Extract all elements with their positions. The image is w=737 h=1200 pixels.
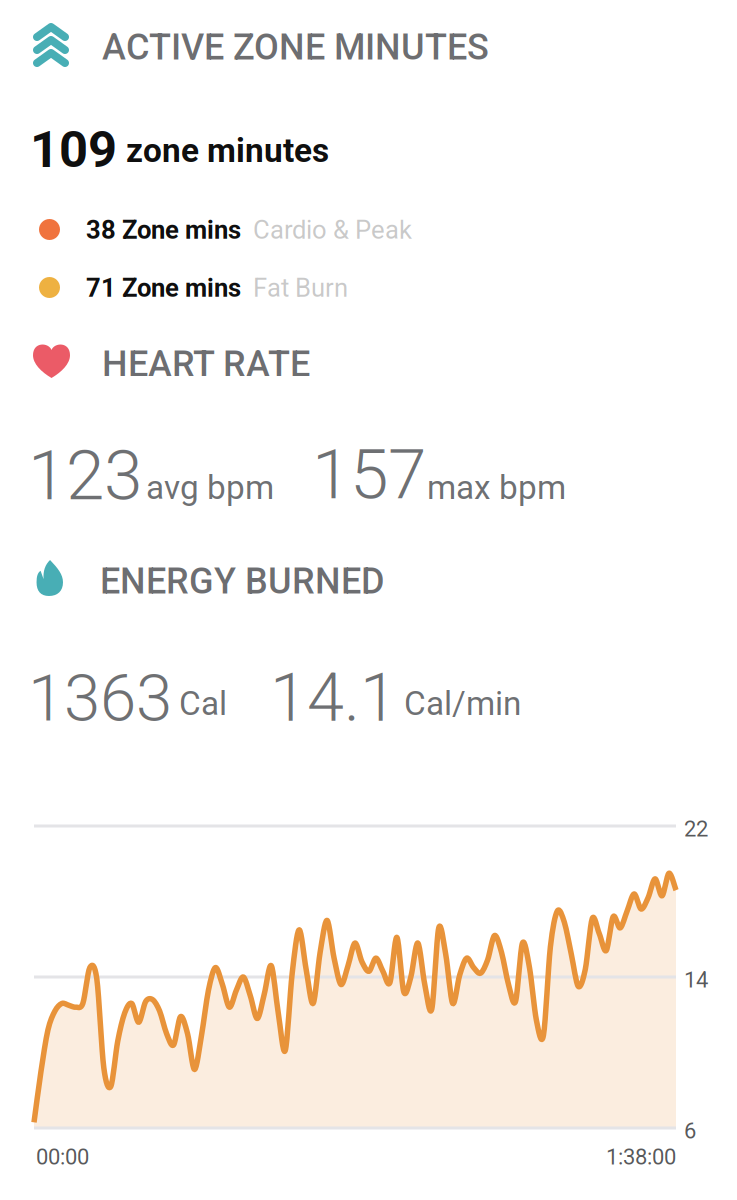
staticText: HEART RATE (102, 343, 310, 385)
staticText: 71 Zone mins (86, 273, 241, 303)
staticText: ACTIVE ZONE MINUTES (102, 26, 489, 68)
staticText: 14 (684, 967, 708, 993)
staticText: 1363 (28, 660, 172, 737)
button[interactable]: HEART RATE (0, 0, 737, 1200)
staticText: zone minutes (126, 131, 329, 170)
staticText: Cardio & Peak (253, 215, 412, 245)
button[interactable]: ACTIVE ZONE MINUTES (0, 0, 737, 1200)
staticText: avg bpm (146, 468, 274, 507)
staticText: Cal (179, 684, 227, 723)
staticText: 00:00 (36, 1144, 89, 1170)
staticText: 123 (28, 435, 142, 516)
staticText: Fat Burn (253, 273, 348, 303)
staticText: 1:38:00 (606, 1144, 676, 1170)
staticText: 38 Zone mins (86, 215, 241, 245)
staticText: 109 (30, 120, 117, 179)
staticText: Cal/min (404, 684, 521, 723)
staticText: 6 (684, 1118, 696, 1144)
staticText: max bpm (427, 468, 566, 507)
staticText: ENERGY BURNED (100, 560, 385, 602)
staticText: 22 (684, 816, 708, 842)
button[interactable]: ENERGY BURNED (0, 0, 737, 1200)
staticText: 157 (312, 434, 426, 515)
staticText: 14.1 (270, 659, 397, 737)
